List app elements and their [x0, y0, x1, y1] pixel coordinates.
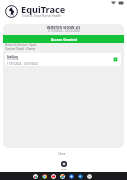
button[interactable]: Scan	[61, 161, 67, 167]
staticText: Horse In Service : Sport	[5, 43, 37, 47]
button[interactable]: Phone	[78, 174, 83, 179]
staticText: FEI 2024	[7, 57, 19, 61]
button[interactable]: Access Granted	[3, 35, 124, 43]
staticText: Stallion	[7, 55, 18, 59]
button[interactable]: Maps	[69, 174, 74, 179]
staticText: Contact Detail : Owner	[5, 47, 36, 51]
button[interactable]: Close	[6, 151, 118, 157]
button[interactable]: Stallion	[5, 53, 121, 66]
staticText: Close	[58, 152, 66, 156]
staticText: Track & Trace Horse Health	[22, 14, 62, 18]
button[interactable]: Browser	[42, 174, 47, 179]
staticText: Scan	[61, 167, 67, 170]
staticText: 11/12/2024 - 14/12/2024	[3, 29, 124, 33]
staticText: 11/01/2024 - 14/01/2024	[7, 62, 38, 66]
button[interactable]: Mail	[33, 174, 38, 179]
button[interactable]: Video	[51, 174, 56, 179]
staticText: EquiTrace	[21, 3, 66, 16]
button[interactable]: Settings	[87, 174, 92, 179]
staticText: WINTER SHOW #3	[3, 25, 124, 30]
staticText: Access Granted	[51, 37, 77, 42]
button[interactable]: Photos	[60, 174, 65, 179]
